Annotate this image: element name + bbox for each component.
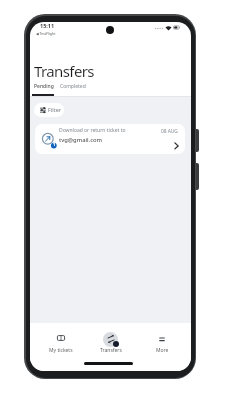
button[interactable]: My tickets (38, 329, 84, 359)
staticText: Transfers (34, 61, 94, 81)
staticText: tvg@gmail.com (59, 136, 103, 144)
staticText: Pending (34, 83, 54, 90)
staticText: My tickets (49, 347, 73, 354)
button[interactable]: Filter (34, 103, 64, 117)
staticText: 1 (53, 142, 56, 147)
button[interactable]: Transfers (88, 325, 134, 359)
button[interactable]: More (139, 329, 185, 359)
staticText: Filter (48, 106, 62, 113)
staticText: Completed (60, 83, 86, 90)
staticText: ◀ TestFlight (36, 31, 56, 36)
staticText: 08 AUG (161, 128, 178, 135)
staticText: Download or return ticket to (59, 127, 126, 134)
staticText: More (156, 347, 169, 354)
staticText: 15:11 (40, 22, 55, 29)
button[interactable]: 1 (35, 124, 185, 154)
staticText: Transfers (100, 347, 122, 354)
button[interactable]: Pending (30, 81, 86, 95)
button[interactable]: Completed (58, 81, 120, 95)
